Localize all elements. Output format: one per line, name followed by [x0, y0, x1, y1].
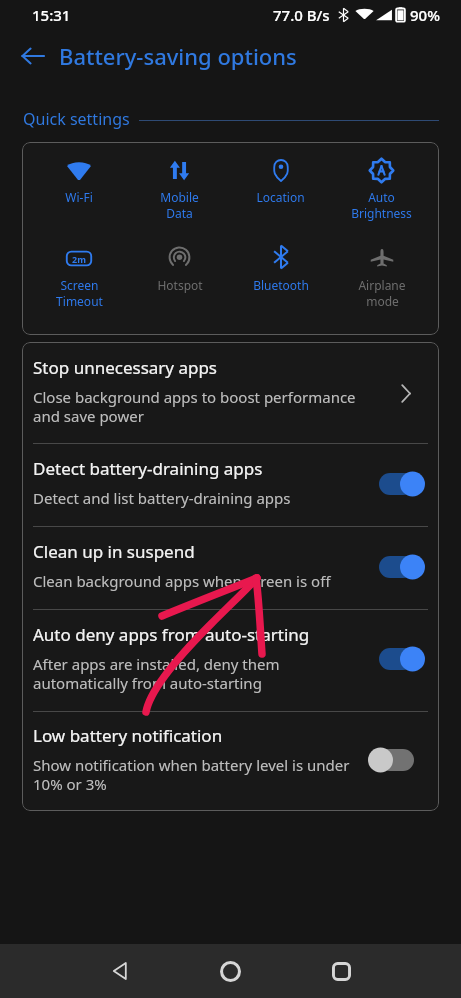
button[interactable]: Airplane — [331, 240, 432, 315]
staticText: Wi-Fi — [65, 189, 93, 205]
staticText: Bluetooth — [253, 277, 309, 293]
staticText: Detect and list battery-draining apps — [33, 488, 291, 508]
button[interactable]: Auto deny apps from auto-starting — [22, 609, 439, 711]
button[interactable]: Bluetooth — [230, 240, 331, 315]
button[interactable]: Off — [368, 747, 425, 773]
staticText: Clean background apps when screen is off — [33, 571, 331, 591]
staticText: 15:31 — [32, 5, 71, 25]
button[interactable]: Clean up in suspend — [22, 526, 439, 609]
staticText: After apps are installed, deny them auto… — [33, 654, 280, 693]
button[interactable]: Low battery notification — [22, 711, 439, 811]
button[interactable]: On — [368, 471, 425, 497]
staticText: Low battery notification — [33, 724, 223, 747]
button[interactable]: Back — [11, 34, 55, 78]
button[interactable]: Home — [204, 945, 256, 997]
button[interactable]: Auto — [331, 152, 432, 227]
staticText: Quick settings — [23, 108, 130, 130]
staticText: Battery-saving options — [59, 41, 297, 71]
staticText: mode — [366, 293, 399, 309]
button[interactable]: On — [368, 646, 425, 672]
staticText: 77.0 B/s — [273, 5, 330, 25]
button[interactable]: Back — [93, 945, 145, 997]
button[interactable]: Open — [390, 377, 422, 409]
button[interactable]: Hotspot — [129, 240, 230, 315]
button[interactable]: Location — [230, 152, 331, 227]
button[interactable]: Stop unnecessary apps — [22, 342, 439, 443]
staticText: Timeout — [56, 293, 103, 309]
staticText: 2m — [72, 253, 86, 265]
staticText: Auto — [368, 189, 395, 205]
staticText: Detect battery-draining apps — [33, 457, 263, 480]
staticText: Screen — [60, 277, 99, 293]
staticText: Hotspot — [157, 277, 203, 293]
button[interactable]: Wi-Fi — [29, 152, 129, 227]
staticText: Airplane — [358, 277, 406, 293]
button[interactable]: Mobile — [129, 152, 230, 227]
staticText: Brightness — [351, 205, 412, 221]
button[interactable]: On — [368, 554, 425, 580]
button[interactable]: 2m — [29, 240, 129, 315]
staticText: 90% — [410, 5, 440, 25]
staticText: Auto deny apps from auto-starting — [33, 623, 310, 646]
button[interactable]: Recent apps — [315, 945, 367, 997]
staticText: Data — [166, 205, 193, 221]
staticText: Clean up in suspend — [33, 540, 195, 563]
button[interactable]: Detect battery-draining apps — [22, 443, 439, 526]
staticText: Close background apps to boost performan… — [33, 387, 356, 426]
staticText: Location — [256, 189, 305, 205]
staticText: Show notification when battery level is … — [33, 755, 350, 794]
staticText: Mobile — [160, 189, 199, 205]
staticText: Stop unnecessary apps — [33, 356, 218, 379]
